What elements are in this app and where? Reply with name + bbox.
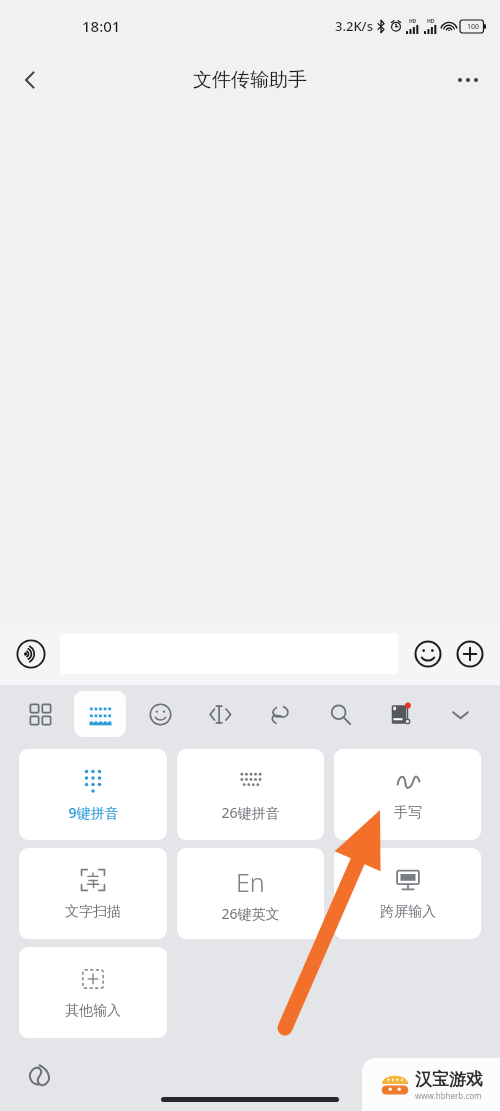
staticText: HD <box>427 18 435 25</box>
button[interactable]: 9键拼音 <box>19 749 167 840</box>
staticText: 18:01 <box>82 16 121 36</box>
staticText: 手写 <box>394 804 422 822</box>
button[interactable]: 其他输入 <box>19 947 167 1038</box>
staticText: HD <box>409 18 417 25</box>
staticText: 100 <box>467 22 480 32</box>
staticText: 3.2K/s <box>335 17 373 35</box>
button[interactable]: En <box>177 848 324 939</box>
button[interactable]: Add <box>454 638 486 670</box>
staticText: En <box>236 865 265 899</box>
staticText: www.hbherb.com <box>415 1090 482 1101</box>
button[interactable]: Emoji <box>130 691 190 737</box>
staticText: 汉宝游戏 <box>415 1069 483 1090</box>
staticText: 文件传输助手 <box>193 68 307 92</box>
staticText: 其他输入 <box>65 1002 121 1020</box>
button[interactable]: Voice input <box>14 637 48 671</box>
staticText: 文字扫描 <box>65 903 121 921</box>
button[interactable]: Move cursor <box>190 691 250 737</box>
button[interactable]: 26键拼音 <box>177 749 324 840</box>
button[interactable]: Collapse keyboard <box>430 691 490 737</box>
button[interactable]: More options <box>444 56 492 104</box>
button[interactable]: Sogou input settings <box>22 1058 56 1092</box>
button[interactable]: Emoji <box>412 638 444 670</box>
staticText: 9键拼音 <box>68 803 119 822</box>
button[interactable]: Dictionary <box>370 691 430 737</box>
button[interactable]: 跨屏输入 <box>334 848 481 939</box>
staticText: 26键英文 <box>221 904 280 923</box>
button[interactable]: 手写 <box>334 749 481 840</box>
button[interactable]: Search <box>310 691 370 737</box>
staticText: 26键拼音 <box>221 803 280 822</box>
button[interactable]: 文字扫描 <box>19 848 167 939</box>
staticText: 跨屏输入 <box>380 903 436 921</box>
button[interactable]: Grid <box>10 691 70 737</box>
button[interactable]: Clipboard link <box>250 691 310 737</box>
button[interactable]: Keyboard <box>74 691 126 737</box>
button[interactable]: Back <box>6 56 54 104</box>
